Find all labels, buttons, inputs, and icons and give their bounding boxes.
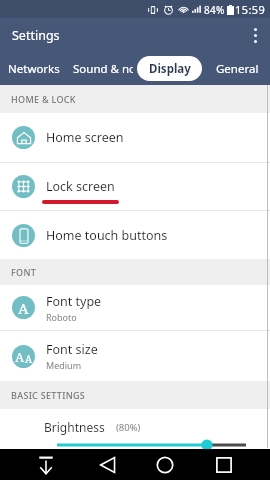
staticText: A xyxy=(25,352,33,366)
staticText: Home touch buttons xyxy=(46,227,168,244)
button[interactable]: Back xyxy=(93,451,121,479)
staticText: BASIC SETTINGS xyxy=(11,389,86,401)
staticText: General xyxy=(216,61,259,77)
button[interactable]: A xyxy=(0,331,270,381)
staticText: Sound & notification xyxy=(73,61,133,77)
staticText: Medium xyxy=(46,359,82,371)
button[interactable]: Home xyxy=(151,451,179,479)
button[interactable]: Networks xyxy=(8,52,60,85)
staticText: Networks xyxy=(8,61,60,77)
button[interactable]: More options xyxy=(240,18,270,52)
button[interactable]: A xyxy=(0,285,270,330)
staticText: Settings xyxy=(12,27,60,44)
button[interactable]: Display xyxy=(137,56,202,81)
staticText: Display xyxy=(149,61,191,77)
staticText: Lock screen xyxy=(46,178,115,195)
staticText: Font type xyxy=(46,293,102,310)
staticText: Home screen xyxy=(46,129,124,146)
staticText: 15:59 xyxy=(235,2,266,17)
staticText: 84% xyxy=(204,3,225,17)
button[interactable]: Recent apps xyxy=(210,451,238,479)
staticText: FONT xyxy=(11,266,37,278)
button[interactable]: Home touch buttons xyxy=(0,211,270,259)
staticText: HOME & LOCK xyxy=(11,93,76,105)
staticText: A xyxy=(18,298,29,318)
button[interactable]: Lock screen xyxy=(0,163,270,210)
staticText: (80%) xyxy=(116,421,141,434)
staticText: Font size xyxy=(46,341,98,358)
button[interactable]: Brightness xyxy=(0,409,270,449)
staticText: Roboto xyxy=(46,311,77,323)
button[interactable]: Home screen xyxy=(0,113,270,162)
button[interactable]: Sound & notification xyxy=(73,52,133,85)
staticText: Brightness xyxy=(44,419,105,435)
button[interactable]: Hide navigation bar xyxy=(32,451,60,479)
button[interactable]: General xyxy=(212,52,262,85)
staticText: A xyxy=(15,348,25,366)
